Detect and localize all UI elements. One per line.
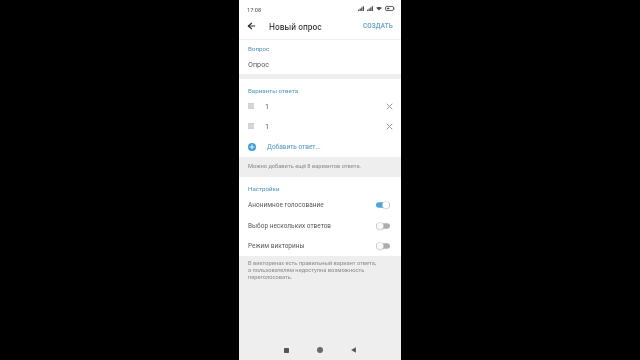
button[interactable]: Выбор нескольких ответов xyxy=(239,216,401,236)
button[interactable]: Назад xyxy=(243,18,259,34)
button[interactable]: СОЗДАТЬ xyxy=(358,19,398,32)
button[interactable]: Режим викторины xyxy=(239,236,401,256)
staticText: Настройки xyxy=(248,185,280,192)
button[interactable]: Удалить xyxy=(381,98,397,114)
staticText: Выбор нескольких ответов xyxy=(248,222,332,230)
staticText: Режим викторины xyxy=(248,242,305,250)
button[interactable]: Анонимное голосование xyxy=(239,195,401,215)
staticText: Новый опрос xyxy=(269,22,322,32)
staticText: Можно добавить ещё 8 вариантов ответа. xyxy=(248,163,362,170)
button[interactable]: 1 xyxy=(239,96,401,116)
button[interactable]: 1 xyxy=(239,116,401,136)
staticText: 17:08 xyxy=(247,7,262,14)
staticText: Анонимное голосование xyxy=(248,201,324,209)
staticText: Добавить ответ... xyxy=(267,143,321,151)
button[interactable]: Добавить ответ... xyxy=(239,137,401,157)
button[interactable]: Обзор xyxy=(276,340,296,360)
button[interactable]: Назад xyxy=(343,340,363,360)
staticText: Опрос xyxy=(248,60,269,68)
button[interactable]: Главный экран xyxy=(310,340,330,360)
staticText: 1 xyxy=(265,102,270,110)
staticText: В викторинах есть правильный вариант отв… xyxy=(248,260,377,281)
staticText: СОЗДАТЬ xyxy=(363,22,393,29)
staticText: 1 xyxy=(265,122,270,130)
button[interactable]: Удалить xyxy=(381,118,397,134)
staticText: Вопрос xyxy=(248,45,270,52)
staticText: Варианты ответа xyxy=(248,87,299,94)
